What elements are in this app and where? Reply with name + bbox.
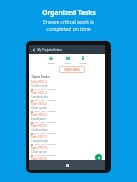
button[interactable]: Task 0721-7 — [31, 135, 105, 146]
staticText: My Projects/Inbox — [37, 48, 62, 52]
staticText: Install parts — [31, 117, 46, 121]
staticText: Complete job — [31, 139, 48, 143]
staticText: Jul 21, 2021 | Station — [34, 110, 56, 113]
button[interactable]: Task 0721-5 — [31, 113, 105, 124]
staticText: Jul 21, 2021 | Station — [34, 143, 56, 146]
staticText: Jul 21, 2021 | Station — [34, 121, 56, 124]
staticText: Jul 21, 2021 | Station — [34, 154, 56, 157]
staticText: Jul 21, 2021 | Station — [34, 99, 56, 102]
button[interactable]: Task 0721-6 — [31, 124, 105, 135]
staticText: Task 0721-8 — [31, 146, 47, 150]
staticText: Confirm time — [31, 128, 48, 132]
staticText: Task 0721-9 — [31, 157, 47, 161]
button[interactable]: Back — [31, 47, 36, 52]
button[interactable]: Task 0721-8 — [31, 146, 105, 157]
button[interactable]: NEW TASK — [59, 66, 85, 73]
button[interactable]: Task 0721-2 — [31, 80, 105, 91]
staticText: Task 0721-6 — [31, 124, 47, 128]
staticText: Organized Tasks — [42, 8, 96, 17]
button[interactable]: Task 0721-9 — [31, 157, 105, 168]
staticText: Teams — [47, 61, 55, 64]
button[interactable]: Task 0721-3 — [31, 91, 105, 102]
button[interactable]: Profile — [79, 56, 87, 64]
staticText: Clean up site — [31, 150, 47, 154]
button[interactable]: Add task — [95, 154, 102, 161]
button[interactable]: Tasks — [64, 56, 71, 64]
staticText: Task 0721-5 — [31, 113, 47, 117]
staticText: Clean up site — [31, 106, 47, 110]
staticText: Open Tasks — [31, 75, 50, 79]
staticText: Jul 21, 2021 | Station — [34, 88, 56, 91]
staticText: Task 0721-2 — [31, 80, 47, 84]
staticText: Profile — [79, 61, 87, 64]
staticText: Tasks — [64, 61, 71, 64]
staticText: Ensure critical work is — [43, 19, 94, 26]
staticText: Task 0721-3 — [31, 91, 47, 95]
staticText: NEW TASK — [64, 68, 80, 72]
staticText: completed on time — [46, 26, 91, 33]
staticText: Confirm time — [31, 84, 48, 88]
button[interactable]: Teams — [47, 56, 55, 64]
staticText: Complete job — [31, 95, 48, 99]
button[interactable]: Task 0721-4 — [31, 102, 105, 113]
staticText: Jul 21, 2021 | Station — [34, 132, 56, 135]
staticText: Task 0721-7 — [31, 135, 47, 139]
staticText: Task 0721-4 — [31, 102, 47, 106]
